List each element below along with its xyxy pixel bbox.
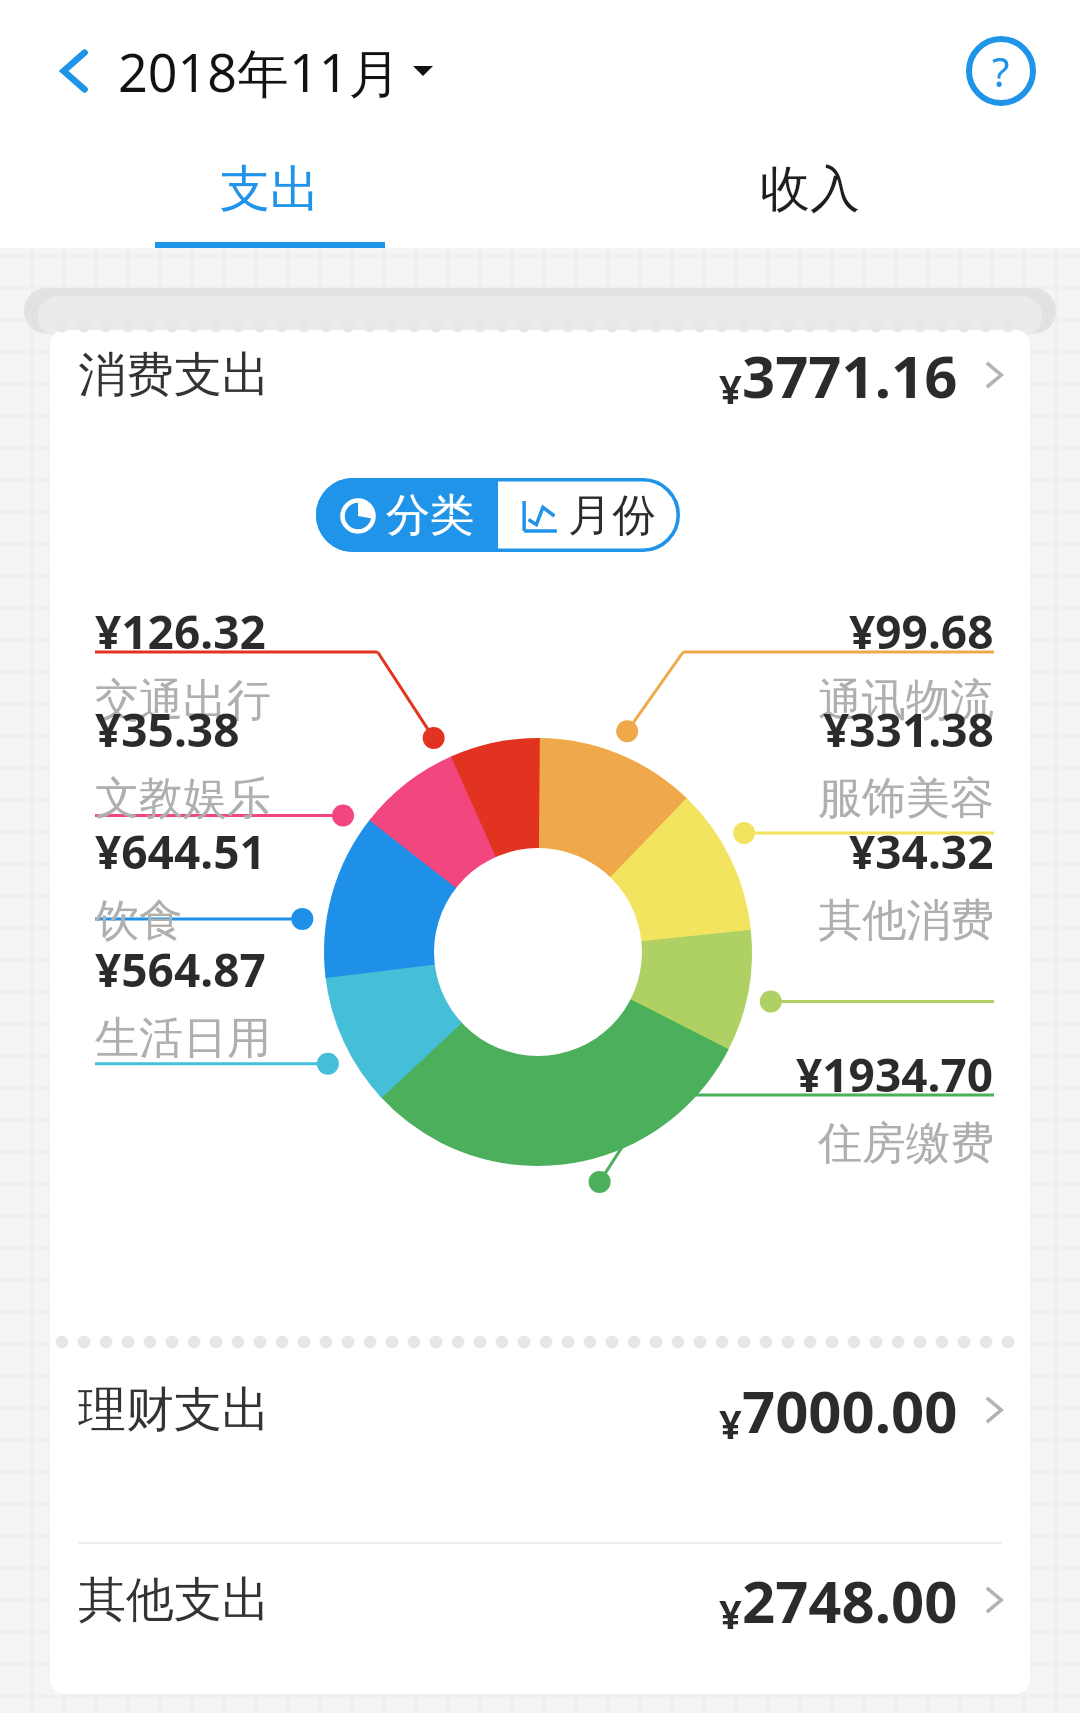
button[interactable]: 消费支出 [0, 330, 1080, 420]
staticText: ¥126.32 [95, 600, 266, 663]
staticText: 分类 [386, 488, 474, 543]
staticText: 支出 [220, 158, 320, 221]
staticText: ¥34.32 [849, 820, 994, 883]
staticText: 住房缴费 [818, 1116, 994, 1171]
button[interactable]: 理财支出 [0, 1360, 1080, 1460]
button[interactable]: Back [28, 24, 122, 118]
staticText: 理财支出 [78, 1380, 270, 1440]
staticText: ¥ [719, 361, 742, 415]
staticText: ¥644.51 [95, 820, 266, 883]
staticText: 交通出行 [95, 673, 271, 728]
staticText: 2018年11月 [118, 36, 401, 107]
staticText: 2748.00 [742, 1561, 958, 1640]
staticText: 饮食 [95, 893, 183, 948]
button[interactable]: Help [958, 28, 1044, 114]
button[interactable]: 收入 [540, 130, 1080, 248]
staticText: 3771.16 [742, 336, 958, 415]
staticText: 其他支出 [78, 1570, 270, 1630]
staticText: ¥564.87 [95, 938, 266, 1001]
button[interactable]: 2018年11月 [118, 34, 433, 108]
button[interactable]: 月份 [498, 478, 680, 552]
staticText: ¥99.68 [849, 600, 994, 663]
staticText: 生活日用 [95, 1011, 271, 1066]
staticText: ¥35.38 [95, 698, 240, 761]
staticText: 收入 [760, 158, 860, 221]
staticText: ¥331.38 [823, 698, 994, 761]
button[interactable]: 分类 [316, 478, 498, 552]
staticText: ¥ [719, 1396, 742, 1450]
button[interactable]: 支出 [0, 130, 540, 248]
staticText: 通讯物流 [818, 673, 994, 728]
staticText: 月份 [568, 488, 656, 543]
staticText: 文教娱乐 [95, 771, 271, 826]
staticText: 服饰美容 [818, 771, 994, 826]
staticText: ¥1934.70 [796, 1043, 994, 1106]
staticText: ¥ [719, 1586, 742, 1640]
staticText: 其他消费 [818, 893, 994, 948]
staticText: 7000.00 [742, 1371, 958, 1450]
button[interactable]: 其他支出 [0, 1550, 1080, 1650]
staticText: ? [992, 44, 1010, 98]
staticText: 消费支出 [78, 345, 270, 405]
